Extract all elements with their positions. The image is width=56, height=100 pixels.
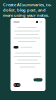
staticText: Generate [33,76,42,83]
button[interactable]: Generate [33,78,42,81]
staticText: Create AI summaries, to-do list, blog po… [3,2,51,18]
button[interactable]: Record [13,83,20,87]
